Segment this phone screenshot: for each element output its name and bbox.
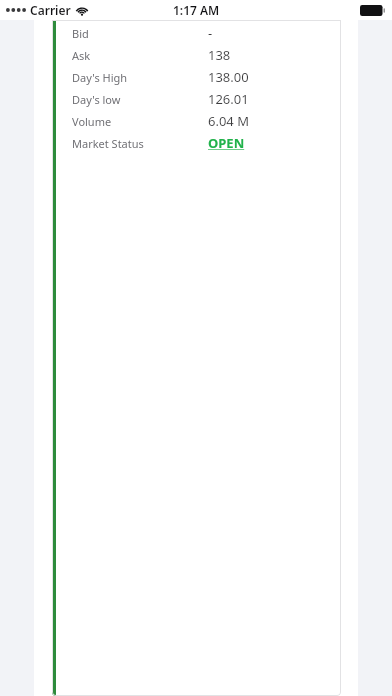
- button[interactable]: Market Status: [56, 132, 341, 154]
- staticText: Carrier: [30, 2, 71, 18]
- staticText: Ask: [72, 48, 91, 63]
- button[interactable]: Day's low: [56, 88, 341, 110]
- button[interactable]: Day's High: [56, 66, 341, 88]
- button[interactable]: Volume: [56, 110, 341, 132]
- staticText: Volume: [72, 114, 112, 129]
- staticText: -: [208, 24, 213, 42]
- staticText: Day's High: [72, 70, 128, 85]
- staticText: Market Status: [72, 136, 144, 151]
- staticText: 1:17 AM: [173, 2, 220, 18]
- staticText: 138: [208, 46, 231, 64]
- staticText: 6.04 M: [208, 112, 249, 130]
- staticText: Bid: [72, 26, 89, 41]
- staticText: OPEN: [208, 134, 245, 152]
- staticText: 126.01: [208, 90, 249, 108]
- button[interactable]: Ask: [56, 44, 341, 66]
- button[interactable]: Bid: [56, 22, 341, 44]
- staticText: Day's low: [72, 92, 121, 107]
- staticText: 138.00: [208, 68, 249, 86]
